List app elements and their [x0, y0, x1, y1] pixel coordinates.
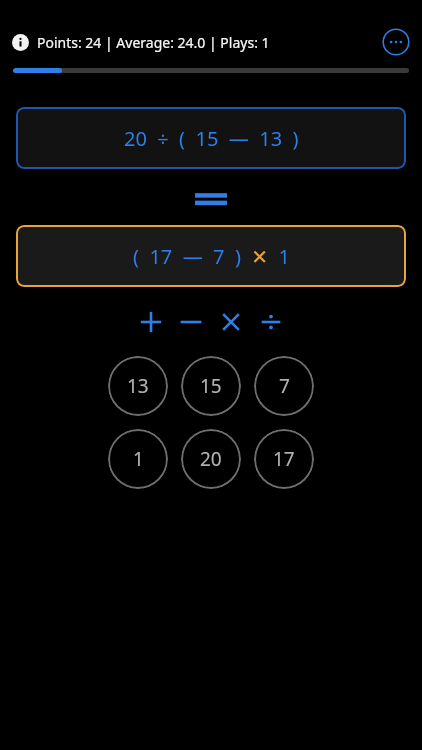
staticText: 1 [133, 446, 144, 472]
button[interactable]: 17 [254, 429, 314, 489]
staticText: Points: 24 | Average: 24.0 | Plays: 1 [37, 33, 270, 52]
button[interactable]: Minus [178, 309, 204, 335]
button[interactable]: 13 [108, 356, 168, 416]
button[interactable]: 7 [254, 356, 314, 416]
staticText: 17 [273, 446, 295, 472]
staticText: 20 ÷ ( 15 — 13 ) [124, 125, 299, 152]
button[interactable]: 20 ÷ ( 15 — 13 ) [16, 107, 406, 169]
staticText: 15 [200, 373, 222, 399]
staticText: 7 [279, 373, 290, 399]
button[interactable]: 20 [181, 429, 241, 489]
button[interactable]: Plus [138, 309, 164, 335]
button[interactable]: 1 [108, 429, 168, 489]
button[interactable]: More options [382, 28, 410, 56]
button[interactable]: Divide [258, 309, 284, 335]
button[interactable]: Multiply [218, 309, 244, 335]
staticText: 13 [127, 373, 149, 399]
button[interactable]: ( 17 — 7 ) ✕ 1 [16, 225, 406, 287]
staticText: 20 [200, 446, 222, 472]
staticText: ( 17 — 7 ) ✕ 1 [133, 243, 290, 270]
button[interactable]: 15 [181, 356, 241, 416]
